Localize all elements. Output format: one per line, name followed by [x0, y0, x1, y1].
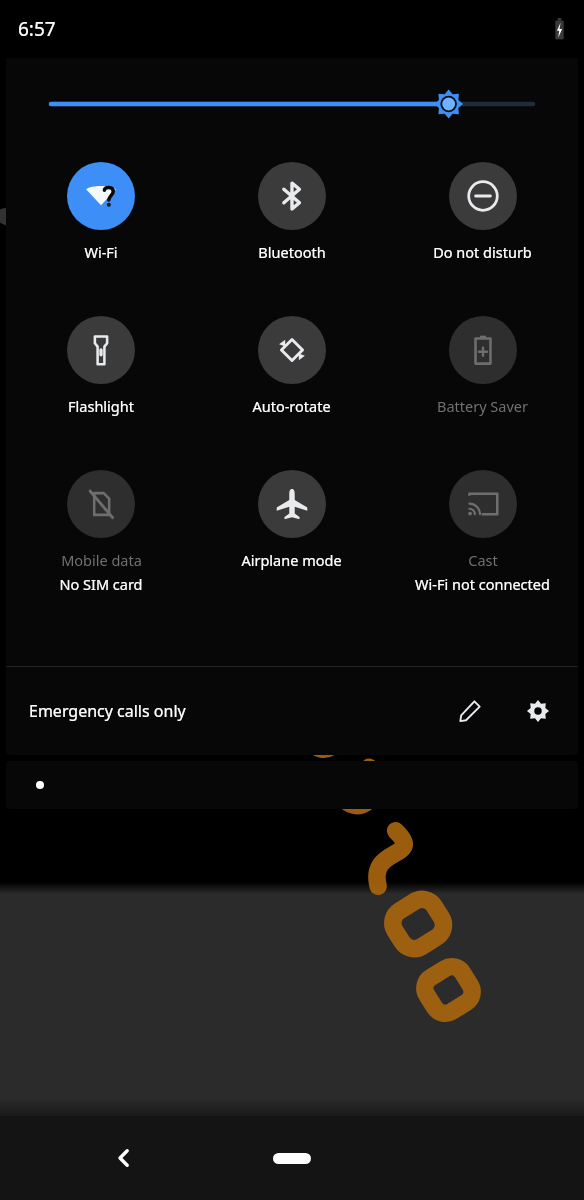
button[interactable]: Back — [98, 1132, 150, 1184]
button[interactable]: Mobile data — [6, 468, 196, 596]
button[interactable]: Flashlight — [6, 314, 196, 418]
button[interactable]: Settings — [514, 687, 562, 735]
staticText: Bluetooth — [258, 242, 326, 262]
button[interactable]: Auto-rotate — [196, 314, 387, 418]
staticText: No SIM card — [59, 574, 143, 594]
button[interactable]: Home — [260, 1144, 324, 1172]
staticText: Wi-Fi not connected — [415, 574, 550, 594]
staticText: 6:57 — [18, 16, 56, 42]
staticText: Flashlight — [68, 396, 134, 416]
button[interactable]: Bluetooth — [196, 160, 387, 264]
staticText: Mobile data — [61, 550, 142, 570]
staticText: Battery Saver — [437, 396, 528, 416]
button[interactable]: Airplane mode — [196, 468, 387, 572]
staticText: Auto-rotate — [252, 396, 331, 416]
button[interactable]: Brightness — [51, 84, 533, 124]
staticText: Wi-Fi — [84, 242, 118, 262]
button[interactable]: Do not disturb — [387, 160, 578, 264]
staticText: Do not disturb — [433, 242, 532, 262]
button[interactable]: Battery Saver — [387, 314, 578, 418]
staticText: Cast — [468, 550, 498, 570]
staticText: Airplane mode — [241, 550, 342, 570]
button[interactable]: Cast — [387, 468, 578, 596]
button[interactable]: Edit tiles — [446, 687, 494, 735]
staticText: Emergency calls only — [29, 700, 186, 722]
button[interactable]: Wi-Fi — [6, 160, 196, 264]
